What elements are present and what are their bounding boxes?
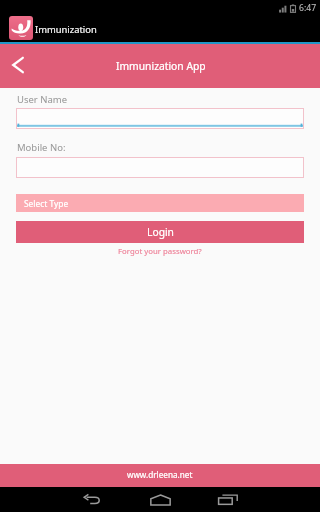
button[interactable]: Home xyxy=(142,487,178,512)
staticText: User Name xyxy=(17,93,68,106)
button[interactable]: Login xyxy=(16,221,304,243)
staticText: www.drleena.net xyxy=(127,469,193,480)
staticText: Immunization App xyxy=(116,59,206,73)
button[interactable]: Back xyxy=(74,487,110,512)
button[interactable]: App icon xyxy=(9,16,33,40)
button[interactable]: Select Type xyxy=(16,194,304,212)
button[interactable]: Back xyxy=(5,52,31,78)
staticText: Mobile No: xyxy=(17,141,66,154)
staticText: 6:47 xyxy=(299,2,317,14)
button[interactable] xyxy=(16,108,304,129)
staticText: Immunization xyxy=(35,23,97,36)
staticText: Select Type xyxy=(24,198,69,209)
staticText: Login xyxy=(147,225,174,239)
button[interactable]: Recent apps xyxy=(210,487,246,512)
button[interactable] xyxy=(16,157,304,178)
button[interactable]: Forgot your password? xyxy=(118,246,202,257)
